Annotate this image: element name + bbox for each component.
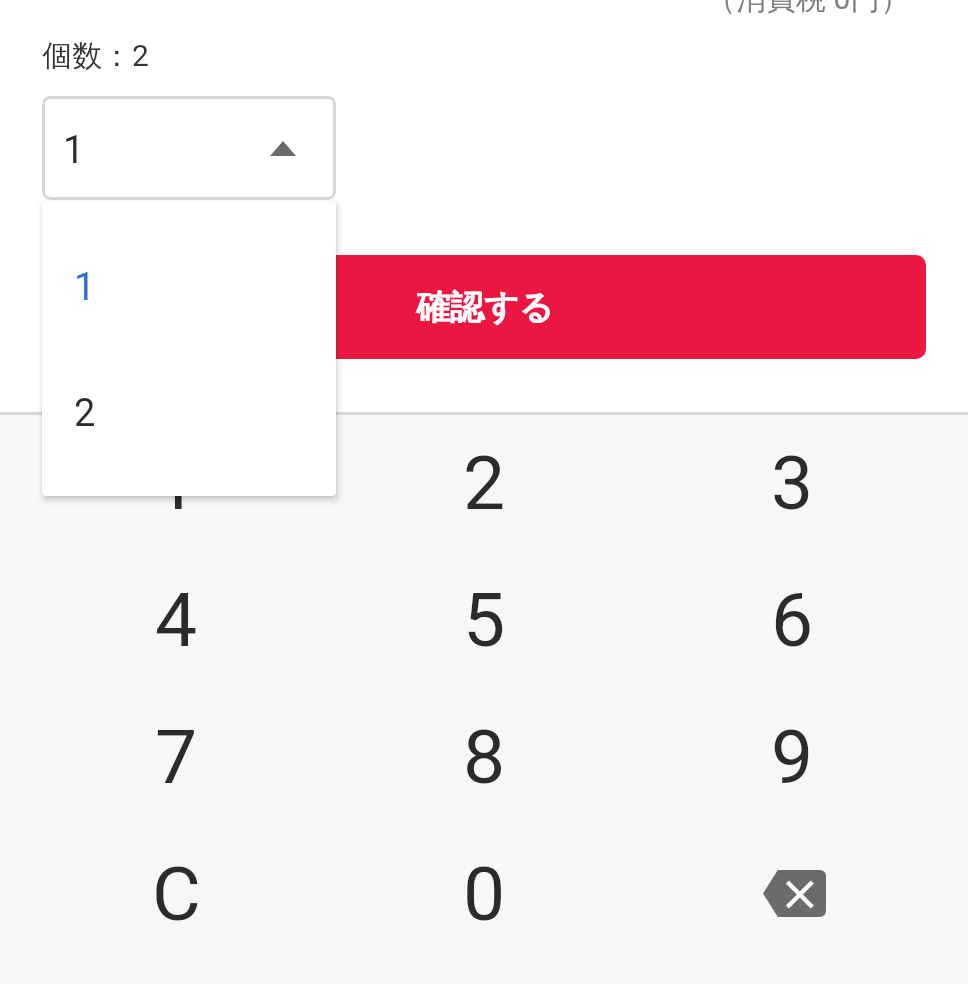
- button[interactable]: 確認する: [43, 255, 926, 359]
- staticText: 1: [155, 439, 198, 527]
- staticText: 3: [771, 439, 814, 527]
- button[interactable]: 5: [330, 551, 638, 688]
- button[interactable]: 9: [638, 688, 946, 825]
- staticText: 6: [771, 576, 814, 664]
- button[interactable]: 1: [42, 96, 336, 200]
- staticText: 9: [771, 713, 814, 801]
- button[interactable]: 2: [330, 414, 638, 551]
- staticText: 2: [463, 439, 506, 527]
- staticText: （消費税 0円）: [706, 0, 911, 18]
- staticText: 1: [74, 265, 96, 310]
- button[interactable]: 1: [22, 414, 330, 551]
- staticText: 7: [155, 713, 198, 801]
- button[interactable]: 1: [42, 259, 336, 315]
- staticText: 4: [155, 576, 198, 664]
- staticText: 8: [463, 713, 506, 801]
- button[interactable]: 7: [22, 688, 330, 825]
- staticText: 5: [463, 576, 506, 664]
- staticText: 1: [63, 128, 85, 173]
- button[interactable]: 2: [42, 385, 336, 441]
- other: Collapse quantity list: [270, 141, 296, 156]
- staticText: 2: [74, 391, 96, 436]
- button[interactable]: Backspace: [638, 825, 946, 962]
- button[interactable]: C: [22, 825, 330, 962]
- staticText: 個数：2: [42, 37, 149, 75]
- button[interactable]: 4: [22, 551, 330, 688]
- staticText: 0: [463, 850, 506, 938]
- button[interactable]: 3: [638, 414, 946, 551]
- button[interactable]: 6: [638, 551, 946, 688]
- button[interactable]: 0: [330, 825, 638, 962]
- staticText: 確認する: [416, 286, 554, 329]
- button[interactable]: 8: [330, 688, 638, 825]
- staticText: C: [152, 850, 201, 938]
